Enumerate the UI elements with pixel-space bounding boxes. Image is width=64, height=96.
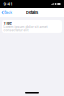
- staticText: 9:41: [3, 2, 12, 6]
- staticText: Back: [4, 10, 12, 15]
- staticText: Title: [3, 21, 11, 25]
- button[interactable]: Back: [2, 10, 12, 15]
- staticText: Details: [26, 10, 38, 15]
- staticText: consectetur elit: [3, 28, 28, 31]
- staticText: Lorem ipsum dolor sit amet: [3, 25, 47, 28]
